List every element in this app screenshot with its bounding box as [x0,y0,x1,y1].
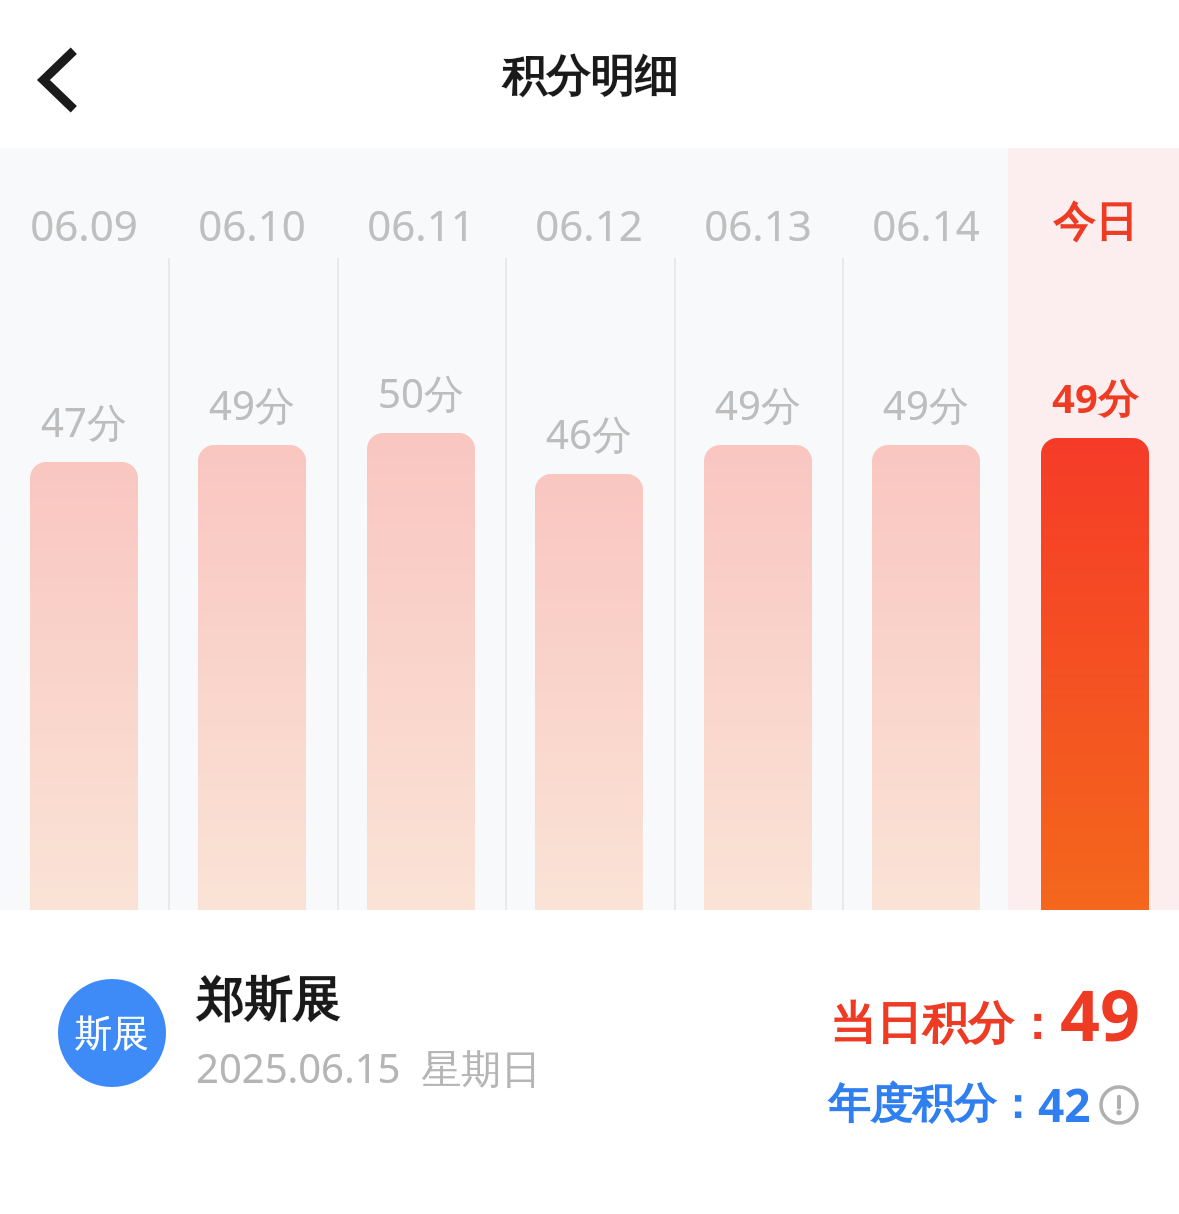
staticText: 06.13 [674,196,842,253]
button[interactable]: 06.09 [0,148,168,910]
button[interactable]: 当日积分： [828,966,1141,1136]
staticText: 积分明细 [502,49,678,104]
button[interactable]: Back [18,38,102,122]
staticText: 2025.06.15 星期日 [196,1040,542,1095]
staticText: 47分 [0,394,168,449]
staticText: 49分 [168,377,336,432]
staticText: 06.10 [168,196,336,253]
staticText: 49分 [674,377,842,432]
staticText: 年度积分： [828,1078,1038,1131]
staticText: 今日 [1011,196,1179,249]
staticText: 49 [1060,966,1141,1061]
button[interactable]: Info [1097,1083,1141,1127]
button[interactable]: 06.12 [505,148,673,910]
staticText: 49分 [1011,370,1179,425]
button[interactable]: 斯展 [58,970,542,1095]
staticText: 郑斯展 [196,970,340,1030]
staticText: 46分 [505,406,673,461]
staticText: 斯展 [75,1010,149,1057]
button[interactable]: 06.13 [674,148,842,910]
staticText: 06.09 [0,196,168,253]
button[interactable]: 今日 [1011,148,1179,910]
staticText: 06.11 [337,196,505,253]
button[interactable]: 06.14 [842,148,1010,910]
button[interactable]: 06.10 [168,148,336,910]
staticText: 42 [1038,1073,1091,1136]
staticText: 50分 [337,365,505,420]
staticText: 49分 [842,377,1010,432]
button[interactable]: 06.11 [337,148,505,910]
staticText: 当日积分： [830,995,1060,1053]
staticText: 06.14 [842,196,1010,253]
staticText: 06.12 [505,196,673,253]
